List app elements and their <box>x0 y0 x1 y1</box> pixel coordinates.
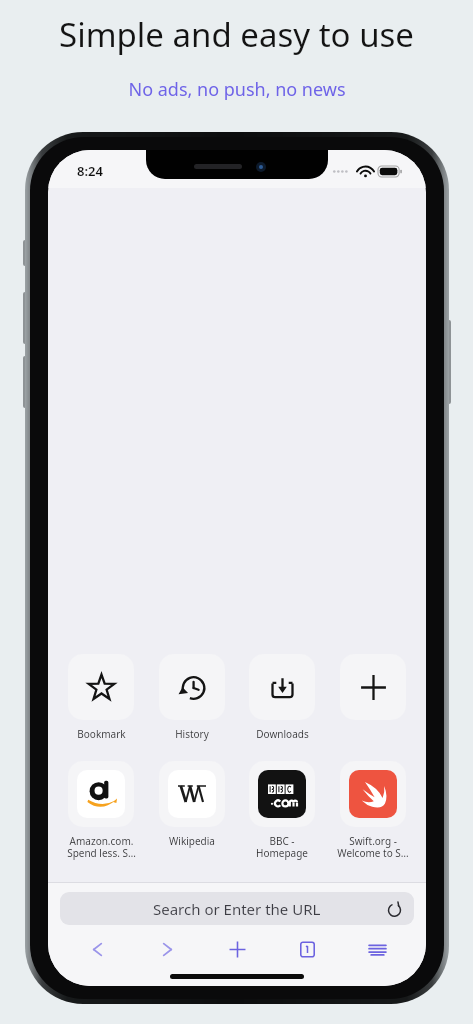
staticText: Simple and easy to use <box>59 12 414 57</box>
button[interactable]: Add shortcut <box>332 654 414 720</box>
staticText: No ads, no push, no news <box>128 77 346 102</box>
staticText: History <box>175 727 209 741</box>
button[interactable]: Downloads <box>241 654 323 741</box>
staticText: Swift.org - Welcome to S… <box>337 834 409 860</box>
staticText: Search or Enter the URL <box>153 899 321 919</box>
button[interactable]: New tab <box>202 934 272 964</box>
button[interactable]: Forward <box>132 934 202 964</box>
button[interactable]: Wikipedia <box>151 761 233 848</box>
staticText: Bookmark <box>77 727 126 741</box>
staticText: Amazon.com. Spend less. S… <box>67 834 136 860</box>
staticText: BBC - Homepage <box>256 834 308 860</box>
staticText: Downloads <box>256 727 309 741</box>
button[interactable]: Reload <box>383 898 405 920</box>
button[interactable]: BBC - Homepage <box>241 761 323 860</box>
staticText: 8:24 <box>77 162 103 180</box>
button[interactable]: Search or Enter the URL <box>60 892 414 925</box>
button[interactable]: Bookmark <box>60 654 142 741</box>
button[interactable]: Amazon.com. Spend less. S… <box>60 761 142 860</box>
button[interactable]: Menu <box>342 934 412 964</box>
button[interactable]: History <box>151 654 233 741</box>
staticText: Wikipedia <box>169 834 215 848</box>
button[interactable]: Back <box>62 934 132 964</box>
button[interactable]: Swift.org - Welcome to S… <box>332 761 414 860</box>
button[interactable]: Tabs <box>272 934 342 964</box>
